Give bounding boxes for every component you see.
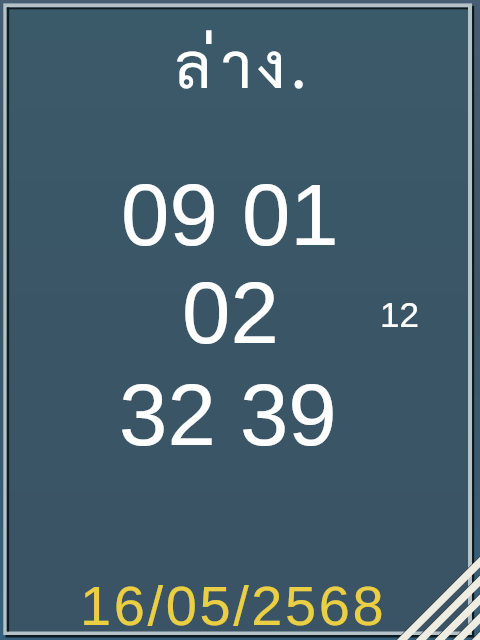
staticText: 12 xyxy=(380,295,419,334)
other: Watermark xyxy=(0,0,480,640)
staticText: ล่าง. xyxy=(175,21,312,103)
staticText: 09 01 xyxy=(121,166,339,263)
staticText: 16/05/2568 xyxy=(80,574,387,637)
staticText: 32 39 xyxy=(119,366,337,463)
staticText: 02 xyxy=(182,264,279,361)
button[interactable]: ล่าง. xyxy=(0,0,480,640)
